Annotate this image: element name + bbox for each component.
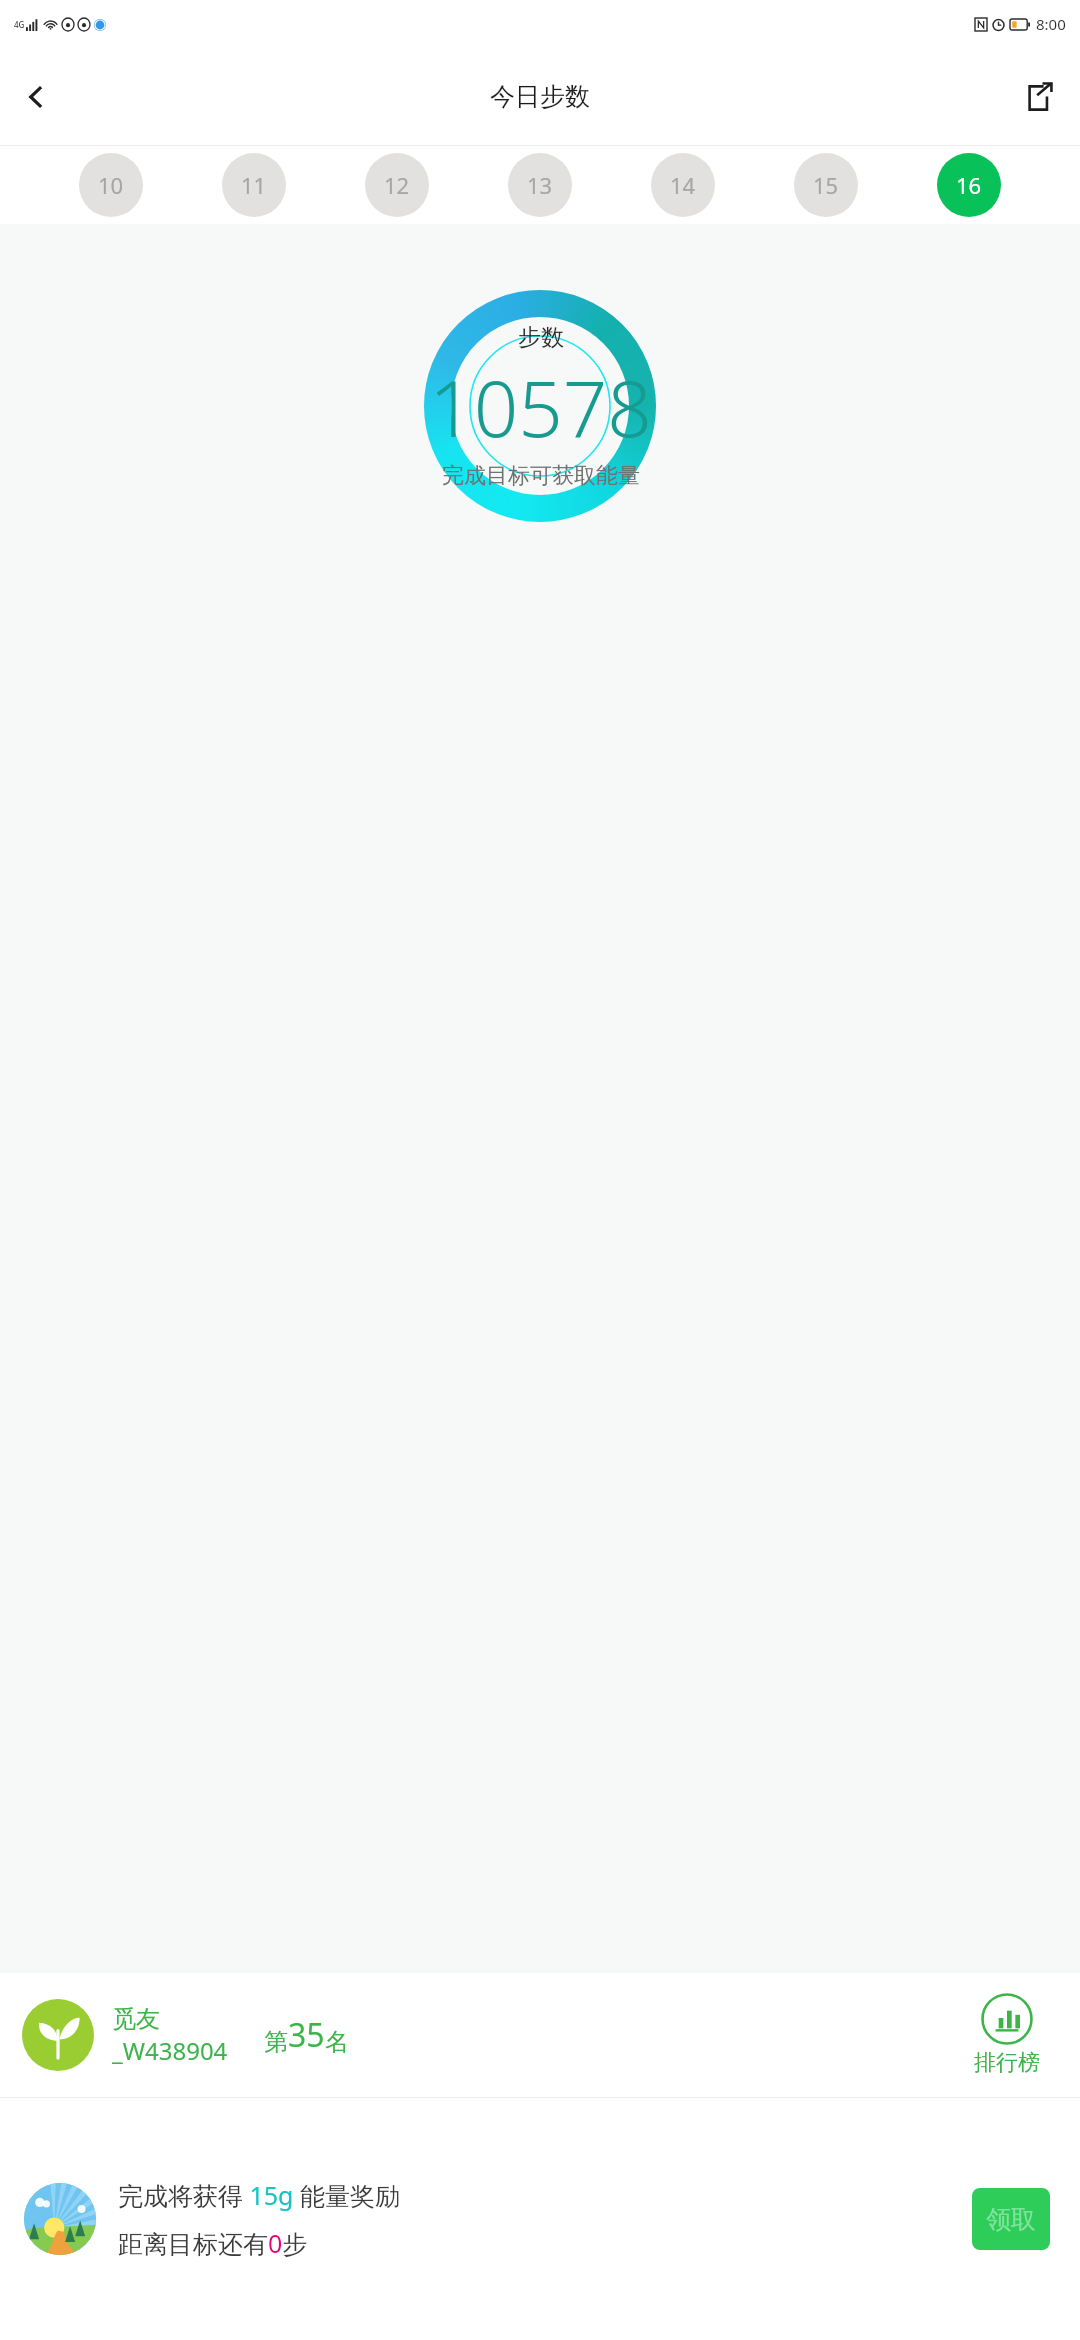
button[interactable]: 16 — [937, 153, 1001, 217]
staticText: 10 — [98, 170, 124, 200]
staticText: 13 — [527, 170, 553, 200]
staticText: 8:00 — [1036, 14, 1066, 34]
staticText: 10578 — [429, 354, 652, 460]
staticText: 12 — [384, 170, 410, 200]
staticText: 排行榜 — [974, 2049, 1040, 2077]
button[interactable]: Back — [8, 69, 64, 125]
button[interactable]: 领取 — [972, 2188, 1050, 2250]
staticText: 35 — [288, 2013, 325, 2057]
staticText: 14 — [670, 170, 696, 200]
staticText: 领取 — [986, 2204, 1036, 2235]
button[interactable]: 10 — [79, 153, 143, 217]
button[interactable]: 完成将获得 15g 能量奖励 — [0, 2098, 1080, 2340]
button[interactable]: Share — [1010, 69, 1066, 125]
button[interactable]: 14 — [651, 153, 715, 217]
button[interactable]: 13 — [508, 153, 572, 217]
staticText: 16 — [956, 170, 982, 200]
staticText: 第 — [264, 2027, 288, 2057]
staticText: 完成将获得 15g 能量奖励 — [118, 2178, 400, 2212]
staticText: 4G — [14, 19, 25, 30]
staticText: 觅友 — [112, 2004, 160, 2034]
staticText: 步数 — [518, 323, 564, 352]
staticText: _W438904 — [112, 2034, 228, 2067]
button[interactable]: 排行榜 — [974, 1993, 1040, 2077]
button[interactable]: 12 — [365, 153, 429, 217]
button[interactable]: 11 — [222, 153, 286, 217]
staticText: 名 — [325, 2027, 349, 2057]
staticText: 今日步数 — [490, 81, 590, 112]
staticText: 15 — [813, 170, 839, 200]
staticText: 完成目标可获取能量 — [442, 462, 640, 490]
button[interactable]: 觅友 — [0, 1973, 1080, 2097]
button[interactable]: 15 — [794, 153, 858, 217]
staticText: 距离目标还有0步 — [118, 2226, 308, 2260]
staticText: 11 — [241, 170, 267, 200]
